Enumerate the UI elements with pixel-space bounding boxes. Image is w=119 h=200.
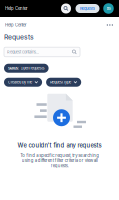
staticText: Request type xyxy=(50,80,71,84)
staticText: Help Center xyxy=(5,22,27,27)
staticText: Requests xyxy=(4,33,34,41)
button[interactable]: Search xyxy=(60,3,71,14)
button[interactable]: Help Center xyxy=(5,21,27,29)
staticText: BS xyxy=(106,6,110,11)
button[interactable]: Status: xyxy=(4,64,49,73)
staticText: Help Center xyxy=(5,6,28,11)
staticText: Open requests xyxy=(21,66,45,70)
button[interactable]: Request type xyxy=(46,78,81,87)
button[interactable]: Help Center xyxy=(0,1,28,16)
button[interactable]: Created by me xyxy=(4,78,42,87)
staticText: Requests xyxy=(80,6,95,11)
staticText: Request contains... xyxy=(7,50,39,54)
staticText: We couldn't find any requests xyxy=(17,142,101,149)
staticText: Status: xyxy=(8,66,19,70)
staticText: To find a specific request, try searchin… xyxy=(20,153,99,168)
button[interactable]: More actions xyxy=(106,22,114,28)
staticText: Created by me xyxy=(8,80,32,84)
button[interactable]: Your profile xyxy=(103,3,114,14)
button[interactable]: Requests xyxy=(75,4,99,13)
